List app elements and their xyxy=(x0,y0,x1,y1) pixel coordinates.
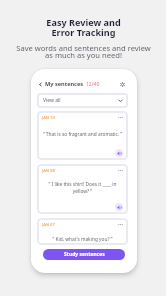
button[interactable]: View all xyxy=(37,93,128,108)
staticText: “ That is so fragrant and aromatic. ” xyxy=(41,131,124,138)
staticText: View all xyxy=(43,97,61,104)
button[interactable]: Play audio xyxy=(115,149,123,157)
button[interactable]: More options xyxy=(118,116,123,119)
button[interactable]: More options xyxy=(118,223,123,226)
staticText: JAN 10 xyxy=(42,115,55,121)
button[interactable]: JAN 07 xyxy=(37,218,128,245)
button[interactable]: JAN 10 xyxy=(37,111,128,160)
staticText: Save words and sentences and review as m… xyxy=(16,43,151,61)
staticText: My sentences xyxy=(45,80,84,88)
button[interactable]: Settings xyxy=(120,82,125,87)
staticText: Study sentences xyxy=(64,251,105,258)
button[interactable]: More options xyxy=(118,169,123,172)
staticText: JAN 07 xyxy=(42,222,55,228)
staticText: Easy Review and Error Tracking xyxy=(46,16,121,39)
button[interactable]: Play audio xyxy=(115,203,123,211)
staticText: “ I like this shirt! Does it ____ in yel… xyxy=(41,181,124,195)
button[interactable]: Study sentences xyxy=(43,249,125,260)
button[interactable]: Back xyxy=(37,81,43,87)
staticText: JAN 08 xyxy=(42,168,55,174)
button[interactable]: JAN 08 xyxy=(37,164,128,214)
staticText: “ Kid, what's making you? ” xyxy=(41,236,124,243)
staticText: 12/40 xyxy=(86,81,100,88)
